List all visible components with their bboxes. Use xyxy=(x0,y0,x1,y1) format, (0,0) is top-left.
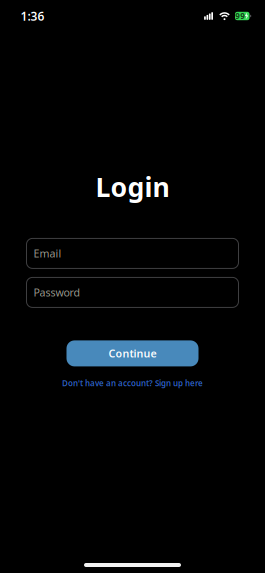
secureTextField[interactable]: Password xyxy=(33,285,238,299)
staticText: Email xyxy=(33,246,61,260)
staticText: Login xyxy=(95,169,169,204)
button[interactable]: Don't have an account? Sign up here xyxy=(62,378,203,388)
staticText: 99 xyxy=(235,11,245,21)
staticText: Don't have an account? Sign up here xyxy=(62,378,203,388)
staticText: Continue xyxy=(108,346,156,360)
staticText: Password xyxy=(33,285,80,299)
button[interactable]: Continue xyxy=(66,340,198,366)
textField[interactable]: Email xyxy=(33,246,238,260)
staticText: 1:36 xyxy=(20,8,44,24)
